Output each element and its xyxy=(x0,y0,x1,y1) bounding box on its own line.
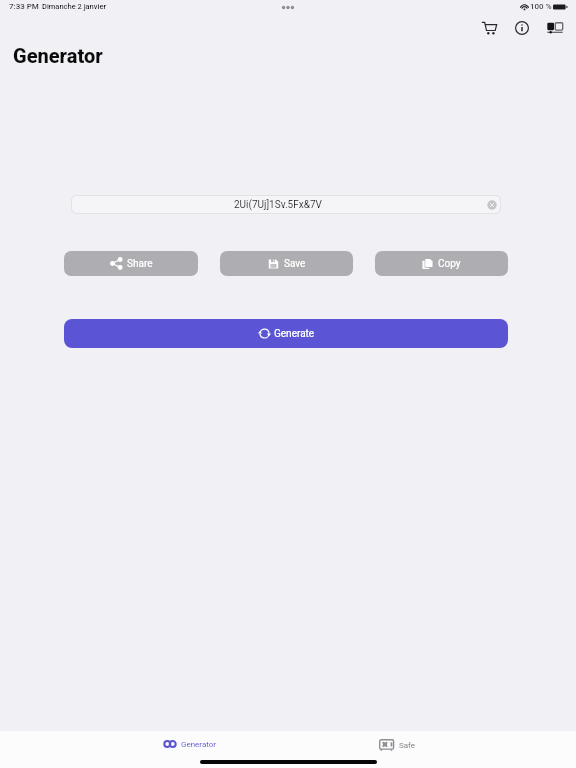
button[interactable]: Share xyxy=(64,251,198,276)
staticText: 2Ui(7Uj]1Sv.5Fx&7V xyxy=(234,199,322,211)
button[interactable]: 2Ui(7Uj]1Sv.5Fx&7V xyxy=(72,196,500,213)
button[interactable]: Cart xyxy=(477,16,501,40)
staticText: Generate xyxy=(274,328,315,340)
staticText: Share xyxy=(127,258,153,270)
button[interactable]: Safe xyxy=(379,738,416,752)
staticText: 7:33 PM xyxy=(9,2,39,11)
button[interactable]: Info xyxy=(510,16,534,40)
staticText: Copy xyxy=(438,258,461,270)
button[interactable]: Generate xyxy=(64,319,508,348)
staticText: Dimanche 2 janvier xyxy=(42,2,107,11)
staticText: 100 % xyxy=(530,2,552,11)
staticText: Generator xyxy=(181,740,217,749)
button[interactable]: Generator xyxy=(161,737,217,751)
button[interactable]: Copy xyxy=(375,251,508,276)
staticText: Generator xyxy=(13,44,103,67)
button[interactable]: Save xyxy=(220,251,353,276)
button[interactable]: Clear xyxy=(487,200,497,210)
staticText: Safe xyxy=(399,741,416,750)
button[interactable]: Multitasking xyxy=(543,16,567,40)
staticText: Save xyxy=(284,258,306,270)
